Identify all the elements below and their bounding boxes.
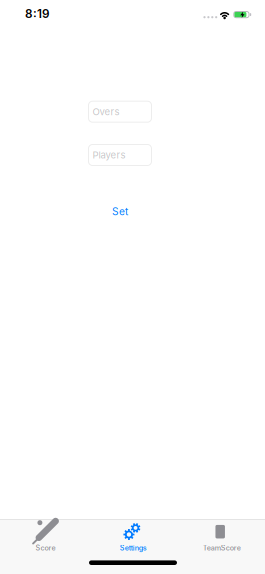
button[interactable]: Settings — [88, 519, 177, 557]
staticText: 8:19 — [25, 7, 50, 21]
staticText: Settings — [120, 544, 147, 552]
button[interactable]: Set — [112, 205, 128, 218]
button[interactable]: Overs — [88, 101, 152, 123]
staticText: Set — [112, 205, 128, 218]
button[interactable]: Score — [0, 519, 88, 557]
staticText: Overs — [92, 106, 119, 117]
staticText: TeamScore — [203, 544, 241, 552]
button[interactable]: TeamScore — [177, 519, 265, 557]
button[interactable]: Players — [88, 144, 152, 166]
staticText: Score — [35, 544, 55, 552]
staticText: Players — [92, 149, 125, 161]
